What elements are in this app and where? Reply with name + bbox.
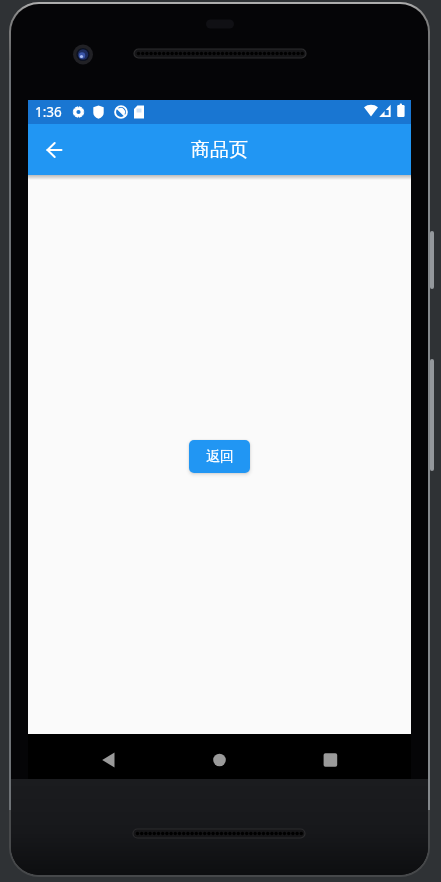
button[interactable] (38, 134, 70, 166)
button[interactable] (308, 737, 353, 777)
button[interactable] (197, 737, 242, 777)
staticText: 商品页 (191, 138, 248, 162)
staticText: 返回 (206, 448, 234, 466)
button[interactable]: 返回 (189, 440, 250, 473)
button[interactable] (86, 737, 131, 777)
staticText: 1:36 (35, 103, 62, 121)
